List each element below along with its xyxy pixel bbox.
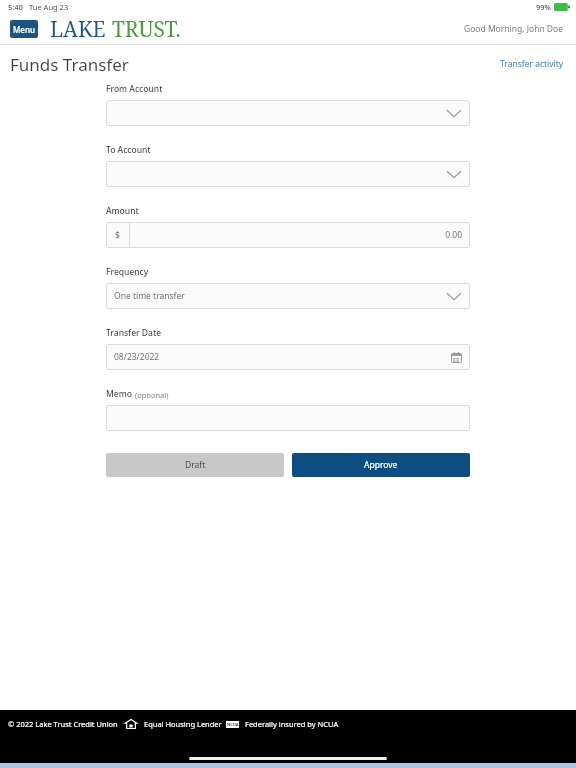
staticText: 99% (536, 2, 551, 12)
staticText: Federally insured by NCUA (245, 719, 339, 729)
staticText: 0.00 (445, 229, 462, 241)
button[interactable]: $ (106, 222, 470, 248)
staticText: Draft (185, 459, 206, 471)
button[interactable]: Pick transfer date (106, 344, 470, 370)
staticText: Transfer Date (106, 327, 162, 339)
staticText: Menu (13, 24, 35, 35)
staticText: Tue Aug 23 (29, 2, 69, 12)
staticText: (optional) (135, 390, 169, 400)
button[interactable]: Menu (10, 20, 38, 38)
staticText: Amount (106, 205, 139, 217)
staticText: LAKE (50, 15, 106, 44)
staticText: © 2022 Lake Trust Credit Union (8, 719, 118, 729)
staticText: One time transfer (114, 290, 185, 302)
button[interactable]: One time transfer (106, 283, 470, 309)
button[interactable]: Approve (292, 453, 470, 477)
staticText: NCUA (227, 722, 239, 727)
staticText: Approve (364, 459, 398, 471)
staticText: Transfer activity (500, 58, 564, 70)
staticText: From Account (106, 83, 163, 95)
staticText: Memo (106, 388, 132, 400)
button[interactable]: Draft (106, 453, 284, 477)
staticText: $ (115, 229, 120, 241)
staticText: 08/23/2022 (114, 351, 160, 363)
button[interactable]: Select account (106, 161, 470, 187)
button[interactable]: Memo (106, 405, 470, 431)
staticText: Good Morning, John Doe (464, 23, 564, 35)
staticText: Equal Housing Lender (144, 719, 222, 729)
staticText: 5:40 (8, 2, 23, 12)
staticText: Funds Transfer (10, 53, 129, 76)
staticText: TRUST. (112, 15, 181, 44)
button[interactable]: Select account (106, 100, 470, 126)
staticText: To Account (106, 144, 151, 156)
staticText: Frequency (106, 266, 149, 278)
button[interactable]: Transfer activity (498, 56, 566, 72)
